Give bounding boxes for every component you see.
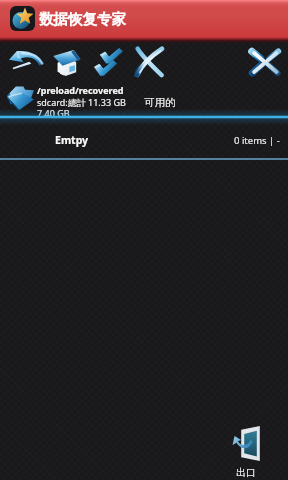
staticText: 出口 — [236, 466, 256, 479]
button[interactable]: Back — [9, 50, 45, 71]
button[interactable]: Exit — [225, 422, 267, 480]
button[interactable]: Deselect all — [131, 48, 164, 76]
staticText: 0 items | - — [234, 134, 280, 147]
staticText: Emtpy — [55, 133, 89, 147]
button[interactable]: App icon — [10, 6, 35, 31]
button[interactable]: Select all — [94, 48, 123, 77]
staticText: sdcard:總計 11.33 GB 7.40 GB — [37, 96, 126, 119]
button[interactable]: Tools — [248, 48, 282, 76]
staticText: /preload/recovered — [37, 84, 124, 96]
staticText: 可用的 — [144, 96, 176, 109]
button[interactable]: Home — [52, 49, 83, 76]
staticText: 数据恢复专家 — [39, 10, 126, 28]
button[interactable]: Emtpy — [0, 125, 288, 155]
